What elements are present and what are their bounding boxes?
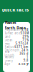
staticText: 9.8: [23, 59, 28, 62]
staticText: 24 h: [21, 48, 28, 52]
staticText: 1: [26, 55, 28, 59]
staticText: Radius: [5, 45, 14, 49]
staticText: Surface area: [5, 31, 20, 35]
staticText: Mass: [5, 42, 10, 45]
button[interactable]: Radius: [5, 45, 28, 49]
staticText: Age: [5, 62, 11, 66]
button[interactable]: Gravity: [5, 59, 28, 62]
staticText: Planet Earth Data: [5, 20, 26, 30]
staticText: Ocean: [5, 38, 13, 42]
button[interactable]: Population: [5, 28, 28, 32]
staticText: 5.97e24: [15, 42, 28, 45]
button[interactable]: Day length: [5, 49, 28, 52]
staticText: 4.5B yr: [18, 62, 28, 66]
staticText: 365 d: [19, 52, 28, 55]
staticText: 71%: [22, 38, 28, 42]
button[interactable]: Surface area: [5, 32, 28, 35]
button[interactable]: Moons: [5, 55, 28, 59]
staticText: 510M: [20, 31, 28, 35]
button[interactable]: Land: [5, 35, 28, 38]
staticText: QUICK FACTS: [1, 7, 28, 13]
staticText: Year length: [5, 50, 15, 57]
staticText: Moons: [5, 55, 14, 59]
button[interactable]: Mass: [5, 42, 28, 45]
staticText: Land: [5, 35, 11, 38]
staticText: Gravity: [5, 59, 13, 62]
button[interactable]: Year length: [5, 52, 28, 55]
staticText: 29%: [22, 35, 28, 38]
staticText: Day length: [5, 48, 20, 52]
staticText: 6371 km: [14, 45, 28, 49]
staticText: Population: [5, 28, 21, 32]
button[interactable]: Age: [5, 62, 28, 66]
staticText: 8.1B: [21, 28, 28, 32]
button[interactable]: Ocean: [5, 38, 28, 42]
